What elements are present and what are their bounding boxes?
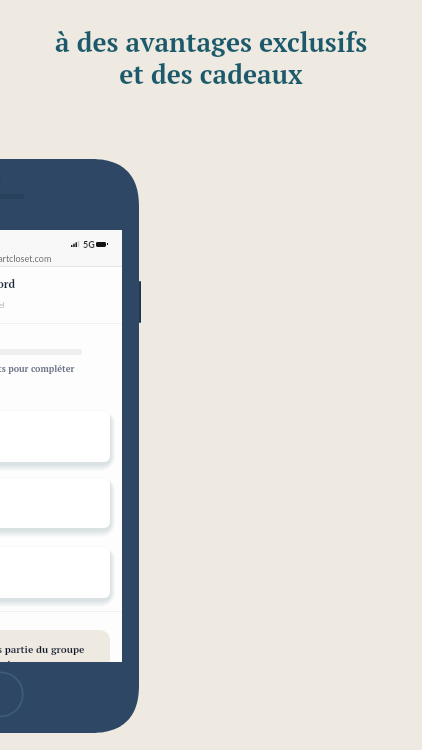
staticText: Bienvenue sur votre espace personnel xyxy=(0,300,5,310)
staticText: Encore 3 éléments pour compléter xyxy=(0,363,75,375)
staticText: Nous faisons partie du groupe mysmartclo… xyxy=(0,643,85,662)
staticText: à des avantages exclusifs et des cadeaux xyxy=(0,25,422,92)
button[interactable]: Nous faisons partie du groupe mysmartclo… xyxy=(0,630,110,662)
staticText: mysmartcloset.com xyxy=(0,253,52,264)
staticText: Mon tableau de bord xyxy=(0,277,16,292)
staticText: 5G xyxy=(83,239,95,250)
